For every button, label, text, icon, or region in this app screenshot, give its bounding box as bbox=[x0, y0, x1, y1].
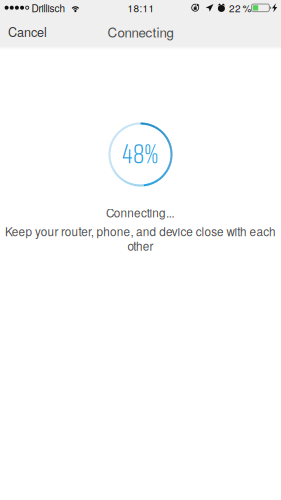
staticText: Connecting... bbox=[106, 204, 174, 221]
staticText: Drillisch bbox=[31, 1, 65, 15]
staticText: Cancel bbox=[8, 22, 47, 41]
staticText: Connecting bbox=[107, 22, 173, 41]
staticText: % bbox=[242, 1, 251, 15]
staticText: 22 bbox=[229, 1, 241, 15]
staticText: 48% bbox=[122, 133, 159, 175]
staticText: 18:11 bbox=[127, 1, 154, 15]
staticText: Keep your router, phone, and device clos… bbox=[5, 223, 276, 240]
button[interactable]: Cancel bbox=[0, 19, 55, 45]
staticText: other bbox=[127, 237, 154, 254]
